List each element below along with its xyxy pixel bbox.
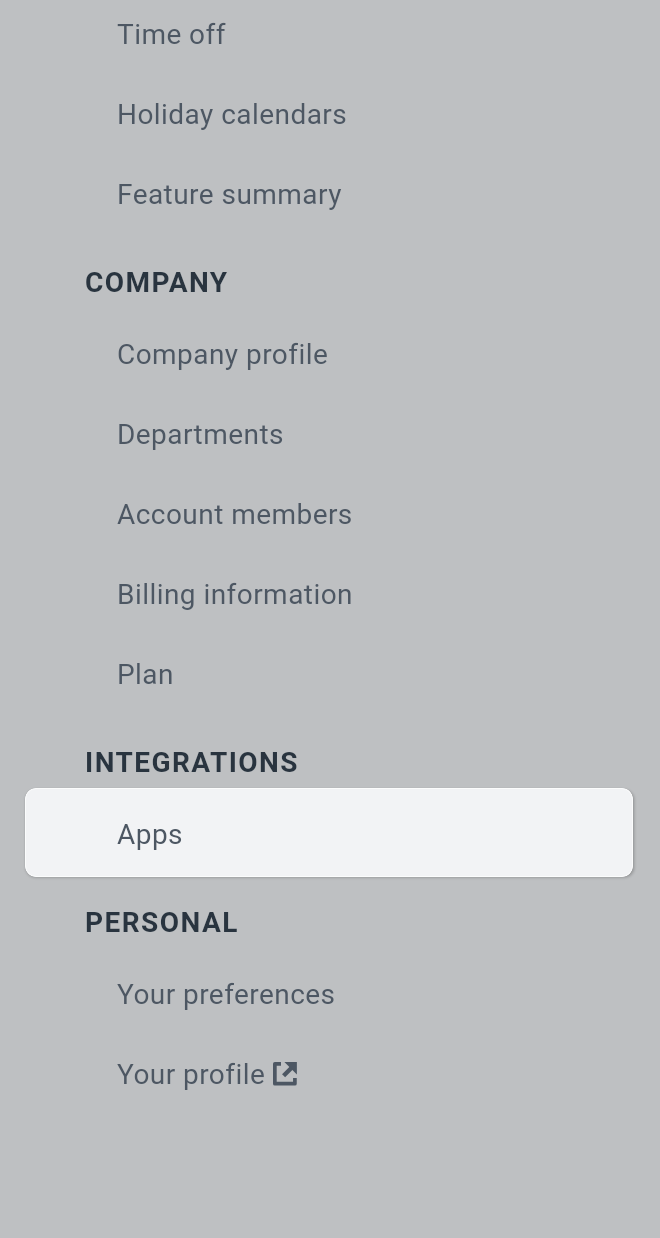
staticText: Your preferences <box>117 978 336 1011</box>
staticText: PERSONAL <box>85 906 239 939</box>
staticText: INTEGRATIONS <box>85 746 300 779</box>
button[interactable]: Company profile <box>0 314 660 394</box>
staticText: Apps <box>117 818 183 851</box>
button[interactable]: Your profile <box>0 1034 660 1114</box>
staticText: Feature summary <box>117 178 342 211</box>
staticText: Departments <box>117 418 284 451</box>
staticText: COMPANY <box>85 266 229 299</box>
button[interactable]: Account members <box>0 474 660 554</box>
button[interactable]: Plan <box>0 634 660 714</box>
button[interactable]: Apps <box>25 788 633 877</box>
staticText: Account members <box>117 498 353 531</box>
button[interactable]: Your preferences <box>0 954 660 1034</box>
button[interactable]: Feature summary <box>0 154 660 234</box>
staticText: Your profile <box>117 1058 266 1091</box>
staticText: Holiday calendars <box>117 98 348 131</box>
button[interactable]: Departments <box>0 394 660 474</box>
other: Opens in a new window <box>273 1062 297 1086</box>
button[interactable]: Billing information <box>0 554 660 634</box>
staticText: Billing information <box>117 578 354 611</box>
button[interactable]: Holiday calendars <box>0 74 660 154</box>
staticText: Company profile <box>117 338 329 371</box>
staticText: Plan <box>117 658 174 691</box>
button[interactable]: Time off <box>0 0 660 74</box>
staticText: Time off <box>117 18 226 51</box>
